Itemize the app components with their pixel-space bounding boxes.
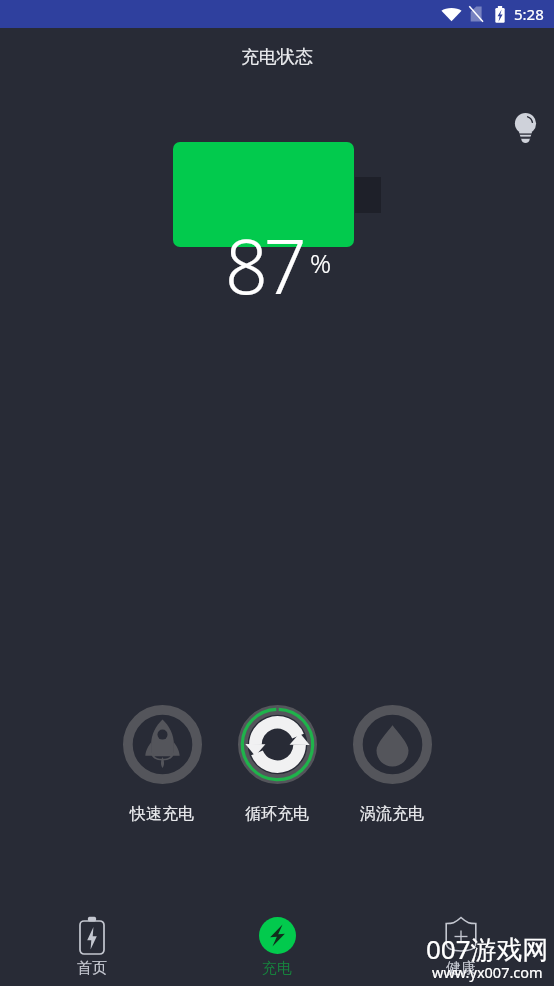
staticText: 5:28 bbox=[514, 4, 544, 24]
staticText: 87 bbox=[225, 214, 303, 316]
button[interactable]: 快速充电 bbox=[115, 705, 209, 824]
button[interactable]: Flashlight bbox=[504, 101, 546, 143]
staticText: 007游戏网 bbox=[426, 931, 549, 967]
button[interactable]: 循环充电 bbox=[230, 705, 324, 824]
button[interactable]: 涡流充电 bbox=[345, 705, 439, 824]
staticText: 快速充电 bbox=[130, 804, 194, 824]
staticText: www.yx007.com bbox=[432, 962, 543, 982]
button[interactable]: 充电 bbox=[232, 912, 322, 978]
staticText: 健康 bbox=[446, 959, 476, 978]
staticText: 首页 bbox=[77, 959, 107, 978]
staticText: 涡流充电 bbox=[360, 804, 424, 824]
staticText: 循环充电 bbox=[245, 804, 309, 824]
button[interactable]: 首页 bbox=[47, 912, 137, 978]
staticText: 充电状态 bbox=[241, 46, 313, 69]
staticText: % bbox=[310, 245, 332, 280]
staticText: 充电 bbox=[262, 959, 292, 978]
button[interactable]: 健康 bbox=[416, 912, 506, 978]
